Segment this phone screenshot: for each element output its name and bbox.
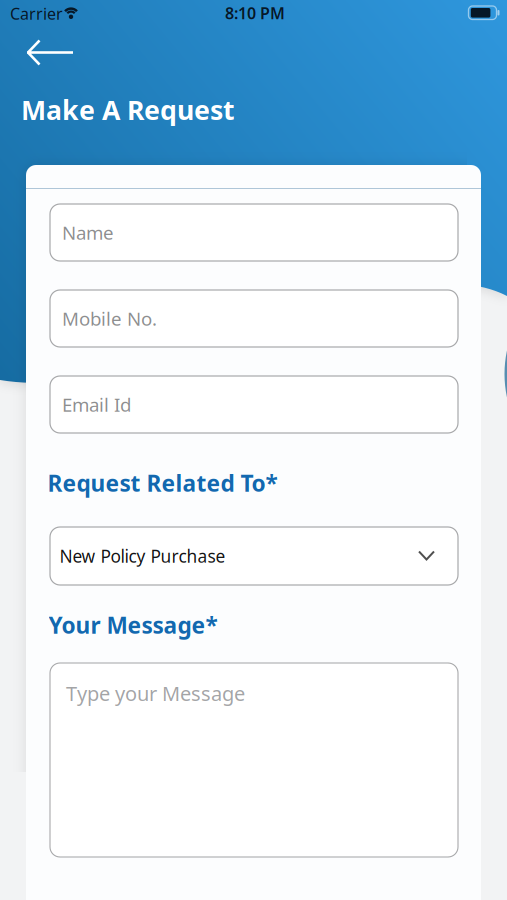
button[interactable]: New Policy Purchase (50, 527, 458, 585)
staticText: Email Id (62, 392, 131, 417)
staticText: Carrier (10, 3, 63, 24)
staticText: Type your Message (66, 680, 245, 707)
staticText: Mobile No. (62, 306, 157, 331)
staticText: Request Related To* (47, 468, 277, 498)
staticText: New Policy Purchase (59, 544, 225, 567)
button[interactable]: Back (0, 0, 100, 84)
staticText: Your Message* (48, 610, 217, 640)
staticText: Make A Request (21, 92, 235, 127)
staticText: 8:10 PM (225, 2, 285, 24)
staticText: Name (62, 220, 114, 245)
